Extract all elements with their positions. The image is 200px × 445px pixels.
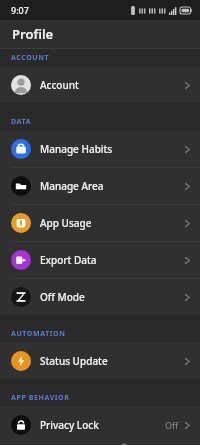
staticText: Profile <box>12 25 54 43</box>
staticText: AUTOMATION <box>11 329 66 339</box>
button[interactable]: Off Mode <box>0 279 200 315</box>
staticText: Account <box>40 78 79 92</box>
staticText: Manage Area <box>40 179 104 193</box>
button[interactable]: Export Data <box>0 242 200 278</box>
staticText: Status Update <box>40 354 108 368</box>
staticText: Privacy Lock <box>40 418 99 432</box>
button[interactable]: Manage Area <box>0 168 200 204</box>
button[interactable]: Privacy Lock <box>0 407 200 443</box>
staticText: App Usage <box>40 216 92 230</box>
staticText: Off <box>165 419 179 431</box>
staticText: Manage Habits <box>40 142 113 156</box>
staticText: Off Mode <box>40 290 85 304</box>
staticText: 9:07 <box>11 4 29 16</box>
staticText: APP BEHAVIOR <box>11 393 70 403</box>
staticText: ACCOUNT <box>11 53 50 63</box>
button[interactable]: Friends <box>100 444 150 445</box>
staticText: Export Data <box>40 253 97 267</box>
button[interactable]: App Usage <box>0 205 200 241</box>
button[interactable]: Account <box>0 67 200 103</box>
staticText: DATA <box>11 117 32 127</box>
button[interactable]: Status Update <box>0 343 200 379</box>
button[interactable]: Manage Habits <box>0 131 200 167</box>
